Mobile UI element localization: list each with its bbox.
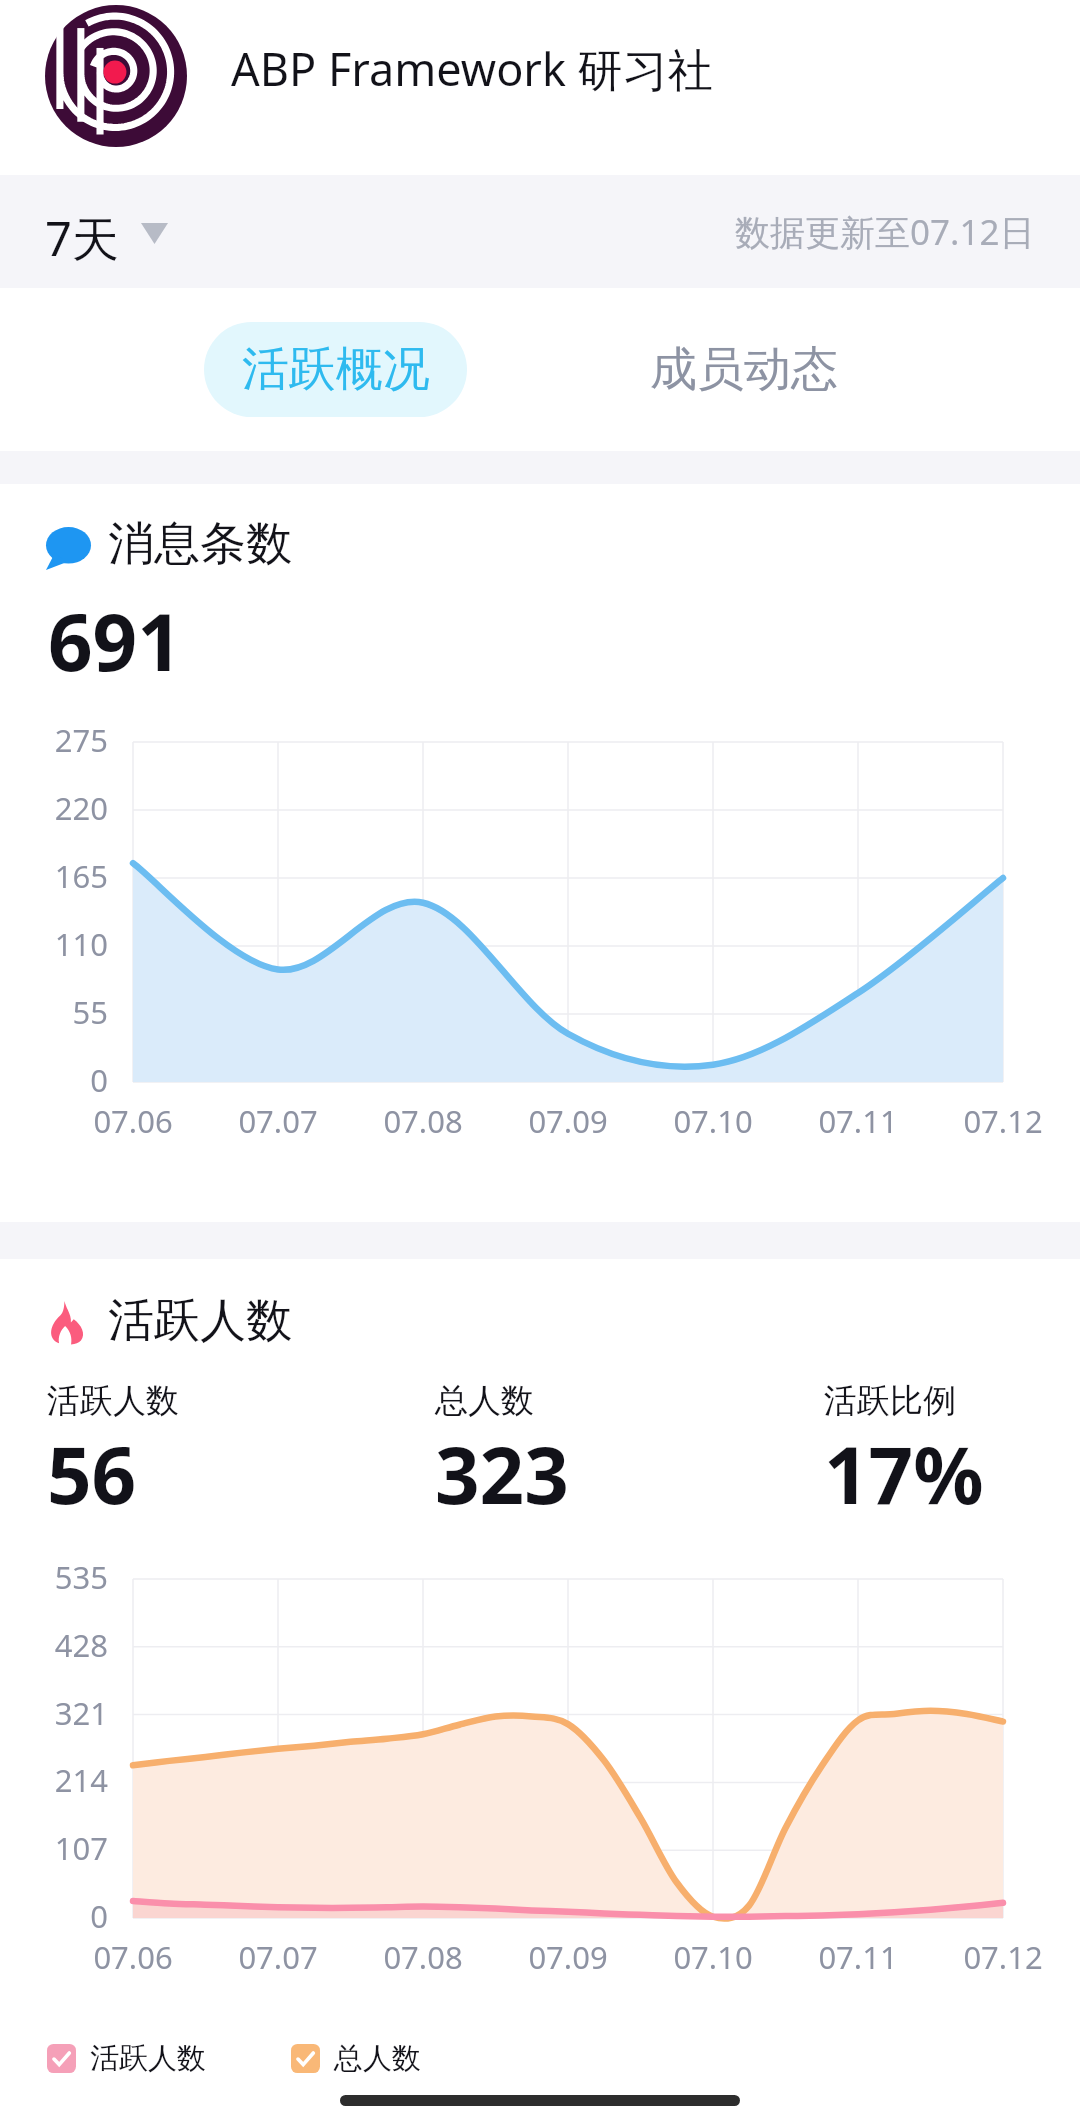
staticText: 323 bbox=[435, 1421, 569, 1527]
staticText: 07.11 bbox=[818, 1936, 898, 1978]
staticText: 总人数 bbox=[435, 1380, 534, 1422]
staticText: 消息条数 bbox=[108, 515, 292, 573]
staticText: 07.08 bbox=[383, 1936, 463, 1978]
staticText: 535 bbox=[54, 1556, 108, 1598]
staticText: 165 bbox=[54, 855, 108, 897]
staticText: 7天 bbox=[45, 206, 119, 270]
staticText: 220 bbox=[54, 787, 108, 829]
staticText: 214 bbox=[54, 1759, 108, 1801]
staticText: 428 bbox=[54, 1624, 108, 1666]
staticText: 07.08 bbox=[383, 1100, 463, 1142]
staticText: 07.10 bbox=[673, 1936, 753, 1978]
staticText: 275 bbox=[54, 719, 108, 761]
staticText: 活跃比例 bbox=[824, 1380, 956, 1422]
staticText: 691 bbox=[48, 588, 182, 694]
staticText: 07.12 bbox=[963, 1100, 1043, 1142]
staticText: 数据更新至07.12日 bbox=[735, 208, 1035, 256]
staticText: 活跃概况 bbox=[242, 340, 430, 399]
button[interactable]: 总人数 bbox=[283, 2030, 429, 2087]
staticText: 0 bbox=[90, 1895, 108, 1937]
button[interactable]: 活跃人数 bbox=[39, 2030, 214, 2087]
staticText: 17% bbox=[824, 1421, 984, 1527]
staticText: 07.10 bbox=[673, 1100, 753, 1142]
staticText: 活跃人数 bbox=[90, 2040, 206, 2077]
other: Messages bbox=[46, 527, 91, 570]
button[interactable]: 活跃概况 bbox=[204, 322, 467, 417]
staticText: 总人数 bbox=[334, 2040, 421, 2077]
staticText: 07.12 bbox=[963, 1936, 1043, 1978]
staticText: 07.09 bbox=[528, 1936, 608, 1978]
staticText: 07.07 bbox=[238, 1100, 318, 1142]
staticText: 110 bbox=[54, 923, 108, 965]
staticText: 55 bbox=[72, 991, 108, 1033]
staticText: 56 bbox=[47, 1421, 137, 1527]
staticText: 0 bbox=[90, 1059, 108, 1101]
staticText: 活跃人数 bbox=[47, 1380, 179, 1422]
staticText: 07.11 bbox=[818, 1100, 898, 1142]
staticText: 活跃人数 bbox=[108, 1292, 292, 1350]
staticText: 07.07 bbox=[238, 1936, 318, 1978]
staticText: 07.06 bbox=[93, 1936, 173, 1978]
staticText: 321 bbox=[54, 1692, 108, 1734]
button[interactable]: 7天 bbox=[0, 186, 192, 278]
staticText: 107 bbox=[54, 1827, 108, 1869]
staticText: ABP Framework 研习社 bbox=[231, 38, 713, 99]
other: Active bbox=[50, 1300, 86, 1345]
staticText: 成员动态 bbox=[650, 340, 838, 399]
staticText: 07.06 bbox=[93, 1100, 173, 1142]
staticText: 07.09 bbox=[528, 1100, 608, 1142]
button[interactable]: 成员动态 bbox=[612, 322, 875, 417]
button[interactable]: ABP Framework 研习社 bbox=[0, 0, 1080, 175]
